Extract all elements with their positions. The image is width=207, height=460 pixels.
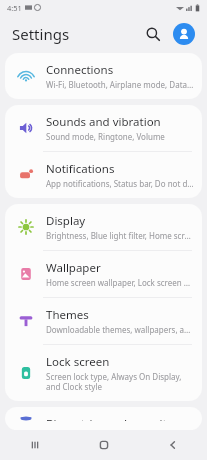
button[interactable]: Home	[69, 430, 138, 460]
button[interactable]: Wallpaper	[5, 251, 202, 297]
staticText: Connections	[46, 62, 114, 78]
staticText: Wi-Fi, Bluetooth, Airplane mode, Data us…	[46, 79, 194, 90]
staticText: Home screen wallpaper, Lock screen wallp…	[46, 277, 194, 288]
staticText: Sounds and vibration	[46, 114, 161, 130]
button[interactable]: Display	[5, 204, 202, 250]
button[interactable]: Lock screen	[5, 345, 202, 401]
button[interactable]: Sounds and vibration	[5, 105, 202, 151]
staticText: Screen lock type, Always On Display, and…	[46, 371, 194, 392]
staticText: Themes	[46, 307, 89, 323]
staticText: Brightness, Blue light filter, Home scre…	[46, 230, 194, 241]
staticText: Biometrics and security	[46, 416, 173, 421]
button[interactable]: Connections	[5, 53, 202, 99]
staticText: Wallpaper	[46, 260, 101, 276]
staticText: App notifications, Status bar, Do not di…	[46, 178, 194, 189]
staticText: Downloadable themes, wallpapers, and ico…	[46, 324, 194, 335]
button[interactable]: Back	[138, 430, 207, 460]
staticText: Settings	[12, 24, 70, 44]
staticText: Sound mode, Ringtone, Volume	[46, 131, 165, 142]
button[interactable]: Notifications	[5, 152, 202, 198]
staticText: Lock screen	[46, 354, 110, 370]
button[interactable]: Biometrics and security	[5, 407, 202, 430]
staticText: Notifications	[46, 161, 115, 177]
button[interactable]: Themes	[5, 298, 202, 344]
button[interactable]: Account	[173, 23, 195, 45]
button[interactable]: Search	[141, 22, 165, 46]
staticText: 4:51	[7, 3, 22, 13]
button[interactable]: Recents	[0, 430, 69, 460]
staticText: Display	[46, 213, 86, 229]
